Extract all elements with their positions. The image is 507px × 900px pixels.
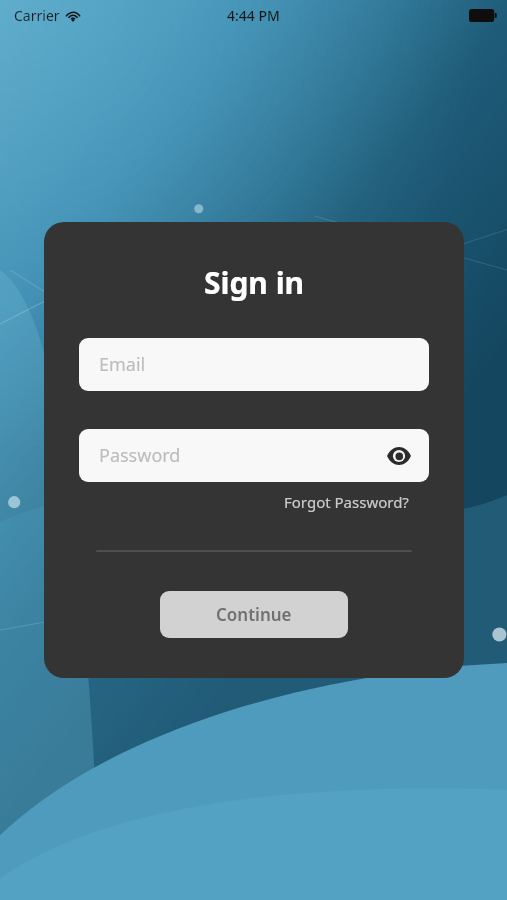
staticText: Email: [99, 352, 146, 377]
staticText: Continue: [216, 603, 292, 626]
button[interactable]: Continue: [160, 591, 348, 638]
staticText: Carrier: [14, 6, 60, 25]
button[interactable]: Password: [79, 429, 429, 482]
staticText: Forgot Password?: [284, 492, 409, 512]
staticText: Sign in: [44, 262, 464, 303]
staticText: 4:44 PM: [227, 6, 280, 25]
button[interactable]: Forgot Password?: [284, 488, 422, 516]
button[interactable]: Email: [79, 338, 429, 391]
staticText: Password: [99, 443, 181, 468]
button[interactable]: Show password: [383, 440, 415, 472]
